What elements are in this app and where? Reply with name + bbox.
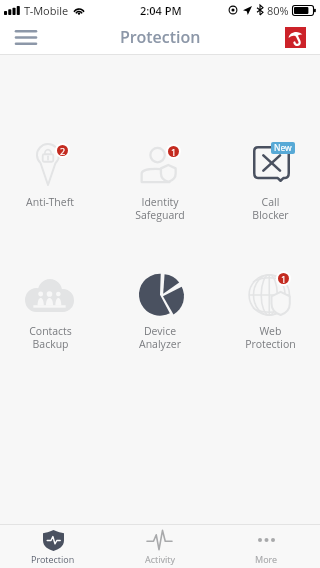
- button[interactable]: Avira: [285, 27, 306, 48]
- button[interactable]: 1: [105, 139, 215, 222]
- button[interactable]: Menu: [9, 20, 43, 54]
- staticText: 1: [171, 146, 177, 157]
- button[interactable]: New: [215, 139, 320, 222]
- staticText: 1: [281, 273, 287, 284]
- staticText: Activity: [145, 553, 175, 565]
- staticText: Anti-Theft: [26, 195, 74, 209]
- staticText: 2: [60, 145, 66, 156]
- button[interactable]: Device Analyzer: [105, 268, 215, 351]
- staticText: New: [274, 142, 292, 154]
- staticText: 2:04 PM: [140, 3, 182, 18]
- button[interactable]: More: [213, 525, 320, 568]
- staticText: Identity Safeguard: [135, 195, 185, 222]
- staticText: T-Mobile: [24, 3, 69, 18]
- staticText: Call Blocker: [252, 195, 289, 222]
- button[interactable]: Contacts Backup: [0, 268, 105, 351]
- staticText: Device Analyzer: [139, 324, 181, 351]
- staticText: More: [255, 553, 278, 565]
- staticText: Contacts Backup: [29, 324, 72, 351]
- button[interactable]: 1: [215, 268, 320, 351]
- staticText: Protection: [31, 553, 75, 565]
- staticText: Protection: [120, 26, 201, 48]
- staticText: Web Protection: [245, 324, 296, 351]
- button[interactable]: Activity: [106, 525, 213, 568]
- button[interactable]: Protection: [0, 525, 106, 568]
- button[interactable]: 2: [0, 139, 105, 209]
- staticText: 80%: [267, 3, 289, 18]
